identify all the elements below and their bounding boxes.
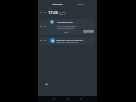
staticText: Notifications — [52, 3, 63, 5]
staticText: Mobile data Tap to set up data plan — [56, 39, 83, 41]
button[interactable]: Mobile data Tap to set up data plan — [40, 37, 95, 45]
staticText: speed and compression — [57, 27, 75, 29]
button[interactable]: Back — [51, 96, 57, 102]
button[interactable]: Notifications — [51, 1, 63, 6]
button[interactable]: Connected to WiFi — [40, 19, 95, 35]
staticText: Sunny 21 — [59, 13, 66, 15]
staticText: A secure router has added — [57, 25, 77, 27]
button[interactable]: Mute — [62, 30, 70, 33]
staticText: Connected to WiFi — [57, 21, 73, 24]
staticText: Fri, 3 Mar — [59, 11, 66, 13]
button[interactable]: Clear all notifications — [44, 82, 49, 87]
button[interactable]: Recents — [78, 96, 84, 102]
staticText: Network — [77, 3, 85, 5]
staticText: Details — [86, 31, 92, 33]
button[interactable]: Network — [76, 1, 85, 6]
button[interactable]: Home — [65, 96, 71, 102]
staticText: 17:26 — [48, 10, 58, 15]
button[interactable]: Details — [83, 30, 94, 33]
staticText: Roaming is on for synced files — [56, 41, 78, 43]
staticText: Mute — [64, 31, 68, 33]
